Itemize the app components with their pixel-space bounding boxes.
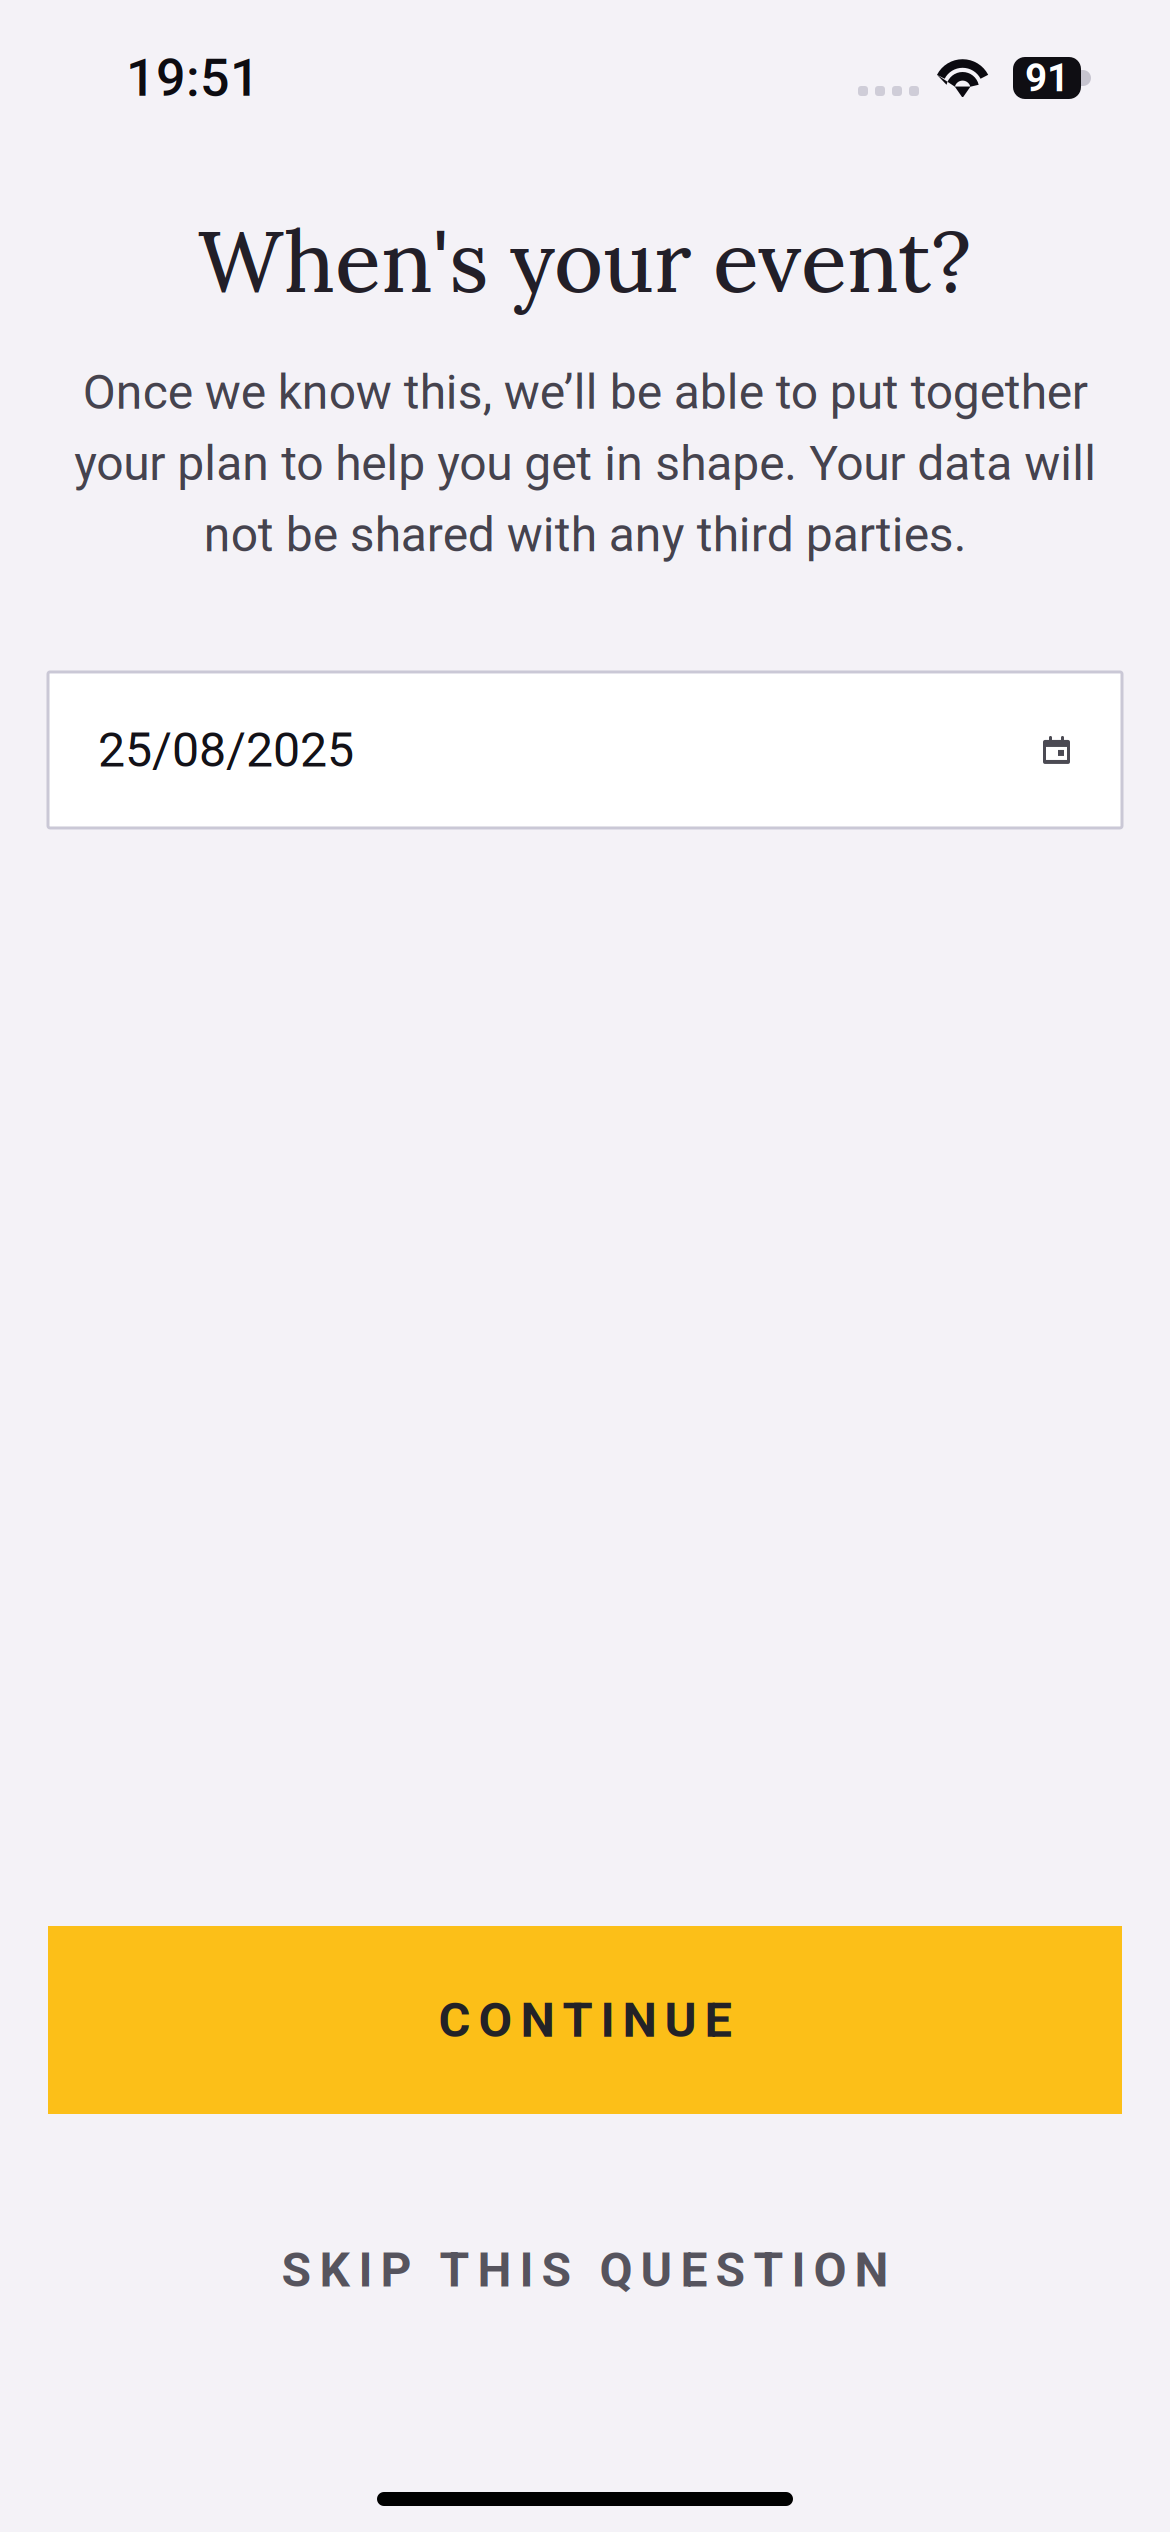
staticText: 19:51 bbox=[126, 47, 260, 108]
button[interactable]: C O N T I N U E bbox=[48, 1926, 1122, 2114]
staticText: 91 bbox=[1025, 55, 1069, 101]
button[interactable]: 25/08/2025 bbox=[48, 672, 1122, 828]
staticText: Once we know this, we’ll be able to put … bbox=[74, 364, 1096, 563]
staticText: S K I P T H I S Q U E S T I O N bbox=[281, 2242, 888, 2298]
staticText: C O N T I N U E bbox=[438, 1991, 731, 2049]
staticText: When's your event? bbox=[198, 207, 972, 315]
button[interactable]: S K I P T H I S Q U E S T I O N bbox=[48, 2224, 1122, 2316]
staticText: 25/08/2025 bbox=[98, 722, 354, 778]
